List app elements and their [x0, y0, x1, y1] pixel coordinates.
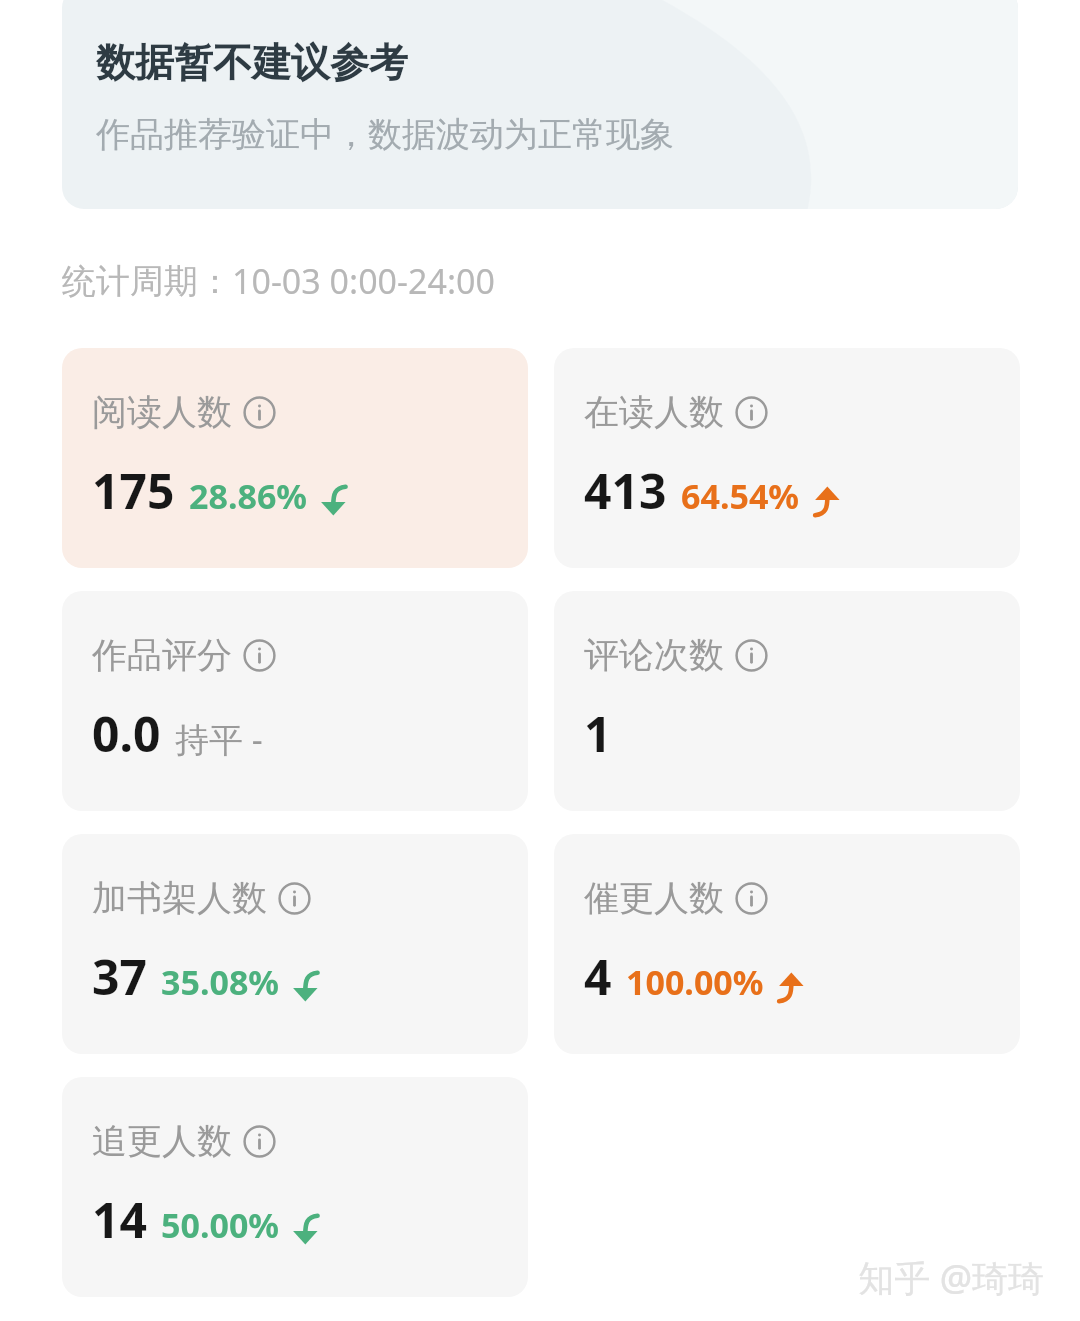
- staticText: 4: [584, 944, 612, 1009]
- other: 说明: [243, 396, 276, 429]
- staticText: 作品推荐验证中，数据波动为正常现象: [96, 113, 674, 156]
- staticText: 催更人数: [584, 876, 724, 920]
- staticText: 阅读人数: [92, 390, 232, 434]
- button[interactable]: 评论次数: [554, 591, 1020, 811]
- staticText: 统计周期：: [62, 260, 232, 303]
- other: 说明: [735, 639, 768, 672]
- button[interactable]: 数据暂不建议参考: [62, 0, 1018, 209]
- button[interactable]: 加书架人数: [62, 834, 528, 1054]
- staticText: 追更人数: [92, 1119, 232, 1163]
- staticText: 100.00%: [626, 959, 764, 1005]
- staticText: 10-03 0:00-24:00: [232, 258, 495, 304]
- other: 说明: [278, 882, 311, 915]
- other: 说明: [243, 639, 276, 672]
- other: 下降: [289, 970, 323, 1004]
- staticText: 413: [584, 458, 667, 523]
- staticText: 知乎 @琦琦: [858, 1253, 1044, 1302]
- staticText: 175: [92, 458, 175, 523]
- staticText: 64.54%: [681, 473, 800, 519]
- button[interactable]: 作品评分: [62, 591, 528, 811]
- button[interactable]: 在读人数: [554, 348, 1020, 568]
- staticText: 28.86%: [189, 473, 308, 519]
- staticText: 1: [584, 701, 612, 766]
- staticText: 作品评分: [92, 633, 232, 677]
- staticText: 持平 -: [175, 716, 263, 762]
- button[interactable]: 阅读人数: [62, 348, 528, 568]
- button[interactable]: 催更人数: [554, 834, 1020, 1054]
- staticText: 0.0: [92, 701, 161, 766]
- other: 下降: [317, 484, 351, 518]
- staticText: 数据暂不建议参考: [96, 38, 408, 87]
- other: 上升: [773, 970, 807, 1004]
- staticText: 在读人数: [584, 390, 724, 434]
- staticText: 加书架人数: [92, 876, 267, 920]
- staticText: 37: [92, 944, 147, 1009]
- other: 说明: [735, 882, 768, 915]
- other: 说明: [243, 1125, 276, 1158]
- other: 上升: [809, 484, 843, 518]
- staticText: 评论次数: [584, 633, 724, 677]
- staticText: 50.00%: [161, 1202, 280, 1248]
- other: 下降: [289, 1213, 323, 1247]
- button[interactable]: 追更人数: [62, 1077, 528, 1297]
- staticText: 14: [92, 1187, 147, 1252]
- other: 说明: [735, 396, 768, 429]
- staticText: 35.08%: [161, 959, 280, 1005]
